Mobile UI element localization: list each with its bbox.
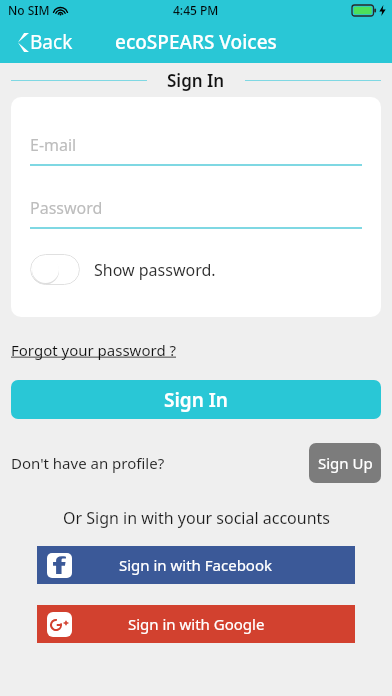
staticText: Sign Up	[318, 453, 373, 473]
button[interactable]: Sign Up	[309, 443, 381, 483]
staticText: Don't have an profile?	[11, 453, 165, 473]
button[interactable]: Forgot your password ?	[11, 338, 177, 362]
button[interactable]: Back	[0, 23, 87, 61]
staticText: 4:45 PM	[173, 2, 219, 18]
staticText: Show password.	[94, 259, 216, 281]
staticText: Back	[30, 29, 73, 55]
staticText: No SIM	[8, 2, 50, 18]
button[interactable]: Show password.	[11, 250, 230, 289]
staticText: ecoSPEARS Voices	[115, 29, 277, 55]
button[interactable]: Sign in with Google	[37, 605, 355, 643]
staticText: Sign In	[167, 69, 225, 92]
staticText: Sign In	[164, 387, 228, 413]
staticText: Password	[30, 197, 103, 219]
staticText: Forgot your password ?	[11, 340, 177, 360]
staticText: E-mail	[30, 134, 77, 156]
button[interactable]: Password	[11, 189, 381, 227]
button[interactable]: Sign In	[11, 380, 381, 419]
staticText: Or Sign in with your social accounts	[63, 507, 330, 529]
staticText: Sign in with Google	[128, 614, 265, 634]
button[interactable]: E-mail	[11, 126, 381, 164]
button[interactable]: Sign in with Facebook	[37, 546, 355, 584]
staticText: Sign in with Facebook	[119, 555, 273, 575]
